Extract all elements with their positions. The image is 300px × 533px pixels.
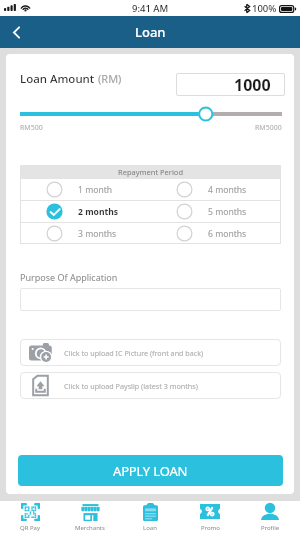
button[interactable]: 1000 bbox=[176, 73, 285, 96]
button[interactable]: QR Pay bbox=[0, 501, 60, 533]
button[interactable]: Merchants bbox=[60, 501, 120, 533]
staticText: Loan bbox=[135, 23, 166, 41]
button[interactable]: Click to upload Payslip (latest 3 months… bbox=[20, 372, 281, 399]
staticText: 4 months bbox=[208, 184, 247, 196]
button[interactable]: Click to upload IC Picture (front and ba… bbox=[20, 339, 281, 366]
staticText: Repayment Period bbox=[118, 167, 184, 177]
button[interactable]: Profile bbox=[240, 501, 300, 533]
button[interactable]: Back bbox=[0, 16, 32, 48]
staticText: RM5000 bbox=[255, 123, 282, 133]
button[interactable]: 4 months bbox=[150, 179, 281, 200]
staticText: (RM) bbox=[98, 71, 122, 86]
staticText: Loan Amount bbox=[20, 71, 95, 87]
staticText: QR Pay bbox=[20, 524, 41, 532]
button[interactable]: Promo bbox=[180, 501, 240, 533]
staticText: Promo bbox=[201, 524, 220, 532]
staticText: 9:41 AM bbox=[132, 2, 169, 15]
button[interactable]: 2 months bbox=[20, 201, 150, 222]
staticText: 100% bbox=[252, 2, 277, 15]
staticText: Merchants bbox=[75, 524, 105, 532]
button[interactable]: APPLY LOAN bbox=[18, 455, 283, 486]
staticText: 1000 bbox=[234, 74, 271, 96]
staticText: Loan bbox=[143, 524, 157, 532]
staticText: APPLY LOAN bbox=[113, 462, 188, 480]
button[interactable]: 5 months bbox=[150, 201, 281, 222]
staticText: Click to upload Payslip (latest 3 months… bbox=[64, 381, 198, 391]
button[interactable]: 1 month bbox=[20, 179, 150, 200]
staticText: Purpose Of Application bbox=[20, 271, 118, 283]
staticText: Profile bbox=[261, 524, 280, 532]
button[interactable]: 3 months bbox=[20, 223, 150, 244]
staticText: 3 months bbox=[78, 228, 117, 240]
button[interactable]: Loan bbox=[120, 501, 180, 533]
staticText: 6 months bbox=[208, 228, 247, 240]
staticText: RM500 bbox=[20, 123, 43, 133]
staticText: Click to upload IC Picture (front and ba… bbox=[64, 348, 204, 358]
button[interactable] bbox=[20, 288, 281, 311]
staticText: 2 months bbox=[78, 206, 119, 218]
button[interactable]: 6 months bbox=[150, 223, 281, 244]
staticText: 1 month bbox=[78, 184, 113, 196]
staticText: 5 months bbox=[208, 206, 247, 218]
